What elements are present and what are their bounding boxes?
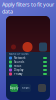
button[interactable]: Network	[6, 56, 50, 60]
staticText: Display	[14, 68, 23, 72]
staticText: Apply filters to fit your data	[2, 1, 54, 15]
staticText: Sounds	[14, 60, 24, 64]
button[interactable]: Sounds	[6, 60, 50, 64]
button[interactable]: Reset	[20, 84, 31, 92]
staticText: Reset	[21, 86, 29, 90]
button[interactable]: Display	[6, 68, 50, 72]
staticText: Focus	[14, 64, 21, 68]
staticText: MORE OPTIONS	[9, 52, 28, 56]
button[interactable]: More	[38, 84, 46, 92]
staticText: Privacy	[14, 72, 22, 76]
button[interactable]: Apply	[10, 84, 18, 92]
staticText: Network	[14, 56, 25, 60]
staticText: Apply	[10, 86, 18, 90]
button[interactable]: Privacy	[6, 72, 50, 76]
button[interactable]: Focus	[6, 64, 50, 68]
